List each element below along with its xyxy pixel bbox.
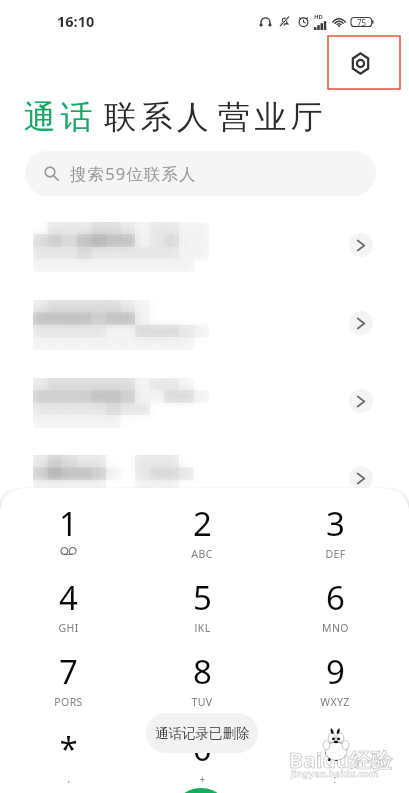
staticText: # [324, 726, 346, 771]
staticText: WXYZ [320, 695, 350, 706]
button[interactable]: Call [171, 788, 231, 793]
button[interactable]: 4 [23, 566, 113, 632]
staticText: 8 [193, 649, 212, 694]
button[interactable]: 5 [157, 566, 247, 632]
staticText: 2 [193, 501, 212, 546]
staticText: 联系人 [104, 97, 214, 137]
button[interactable]: Open contact [349, 466, 373, 490]
staticText: GHI [58, 621, 79, 632]
staticText: 9 [326, 649, 345, 694]
button[interactable]: # [290, 717, 380, 783]
staticText: 搜索59位联系人 [70, 162, 197, 185]
staticText: 5 [193, 575, 212, 620]
button[interactable]: 3 [290, 492, 380, 558]
staticText: 通话 [24, 97, 97, 137]
staticText: ABC [191, 547, 213, 558]
button[interactable]: 搜索59位联系人 [25, 151, 376, 196]
staticText: 3 [326, 501, 345, 546]
button[interactable]: 2 [157, 492, 247, 558]
staticText: 0 [193, 726, 212, 771]
button[interactable]: 8 [157, 640, 247, 706]
button[interactable]: 6 [290, 566, 380, 632]
staticText: TUV [191, 695, 213, 706]
staticText: Baidu经验 [289, 746, 393, 775]
staticText: HD [314, 13, 323, 21]
staticText: * [59, 726, 78, 771]
staticText: PQRS [54, 695, 83, 706]
staticText: + [199, 772, 206, 783]
staticText: 4 [59, 575, 78, 620]
staticText: 16:10 [57, 11, 95, 31]
staticText: JKL [194, 621, 211, 632]
button[interactable]: Open contact [349, 389, 373, 413]
button[interactable]: 0 [157, 717, 247, 783]
button[interactable]: 7 [23, 640, 113, 706]
button[interactable]: 9 [290, 640, 380, 706]
staticText: DEF [325, 547, 346, 558]
staticText: ; [333, 772, 337, 783]
staticText: , [67, 772, 71, 783]
staticText: MNO [322, 621, 349, 632]
button[interactable]: Open contact [349, 311, 373, 335]
staticText: 通话记录已删除 [155, 725, 250, 742]
staticText: 75 [357, 17, 367, 28]
button[interactable]: Settings [340, 43, 380, 83]
button[interactable]: 1 [23, 492, 113, 558]
staticText: 7 [59, 649, 78, 694]
staticText: 营业厅 [218, 97, 328, 137]
staticText: 6 [326, 575, 345, 620]
staticText: jingyan.baidu.com [291, 767, 379, 780]
button[interactable]: Open contact [349, 233, 373, 257]
staticText: 1 [59, 501, 78, 546]
button[interactable]: * [23, 717, 113, 783]
